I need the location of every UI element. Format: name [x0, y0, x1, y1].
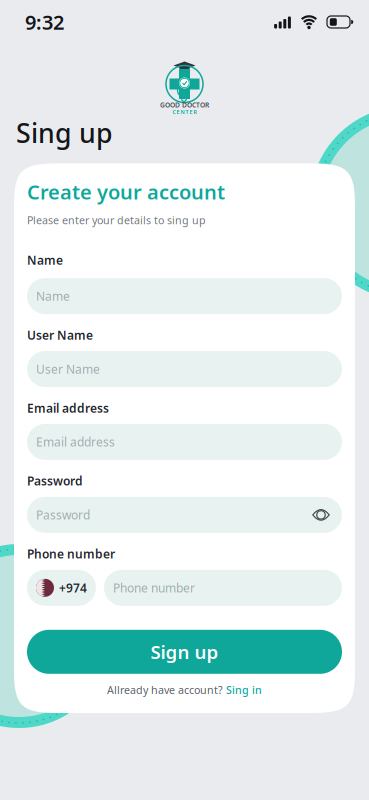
- staticText: Create your account: [27, 178, 225, 205]
- staticText: Please enter your details to sing up: [27, 213, 206, 227]
- staticText: Password: [27, 473, 83, 489]
- button[interactable]: User Name: [27, 351, 342, 387]
- staticText: GOOD DOCTOR: [160, 101, 209, 109]
- button[interactable]: Sign up: [27, 630, 342, 674]
- staticText: Sign up: [150, 639, 218, 664]
- staticText: Email address: [36, 434, 115, 450]
- button[interactable]: Sing in: [226, 683, 262, 697]
- staticText: Sing in: [226, 683, 262, 697]
- staticText: Name: [27, 252, 63, 268]
- staticText: User Name: [27, 327, 93, 343]
- staticText: Sing up: [16, 115, 113, 150]
- staticText: Phone number: [27, 546, 115, 562]
- staticText: Allready have account?: [107, 683, 223, 697]
- staticText: Password: [36, 507, 90, 523]
- staticText: Name: [36, 288, 70, 304]
- button[interactable]: Email address: [27, 424, 342, 460]
- button[interactable]: Name: [27, 278, 342, 314]
- staticText: Email address: [27, 400, 109, 416]
- button[interactable]: Country code +974: [27, 570, 96, 606]
- staticText: C E N T E R: [172, 108, 196, 116]
- button[interactable]: Password: [27, 497, 342, 533]
- button[interactable]: Show password: [312, 507, 330, 522]
- staticText: User Name: [36, 361, 100, 377]
- staticText: +974: [59, 580, 87, 596]
- staticText: 9:32: [25, 9, 64, 35]
- staticText: Phone number: [113, 580, 195, 596]
- button[interactable]: Phone number: [104, 570, 342, 606]
